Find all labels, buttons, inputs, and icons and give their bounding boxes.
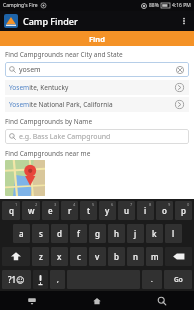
staticText: a [19,228,24,239]
button[interactable]: m [146,247,163,266]
staticText: e.g. Bass Lake Campground [19,132,111,142]
button[interactable]: Go [164,270,192,289]
staticText: Find Campgrounds by Name [5,117,93,126]
staticText: , [57,275,59,284]
button[interactable]: More options [178,11,190,31]
staticText: 4:16 PM [172,2,191,9]
staticText: v [95,251,100,262]
button[interactable]: 2 [22,201,40,220]
button[interactable]: 1 [2,201,20,220]
staticText: 0 [187,202,190,207]
staticText: Yosemite, Kentucky [9,83,69,92]
button[interactable]: Select suggestion [174,82,185,93]
staticText: 4 [73,202,76,207]
staticText: m [151,251,159,262]
button[interactable]: Clear text [174,64,185,75]
button[interactable]: Voice input [33,270,48,289]
button[interactable]: 8 [137,201,154,220]
staticText: 2 [35,202,38,207]
staticText: t [87,205,91,216]
staticText: q [9,205,14,216]
button[interactable]: 7 [118,201,135,220]
button[interactable]: f [70,224,87,243]
button[interactable]: c [70,247,87,266]
staticText: e [48,205,53,216]
staticText: b [114,251,119,262]
button[interactable]: 6 [99,201,116,220]
button[interactable]: 9 [156,201,173,220]
staticText: r [68,205,72,216]
button[interactable]: z [32,247,49,266]
staticText: y [105,205,110,216]
staticText: 7 [130,202,133,207]
button[interactable]: Yosemite, Kentucky [5,80,189,95]
staticText: Camping's Fire [3,2,38,9]
button[interactable]: ?1☺ [2,270,31,289]
button[interactable]: k [146,224,163,243]
staticText: Find Campgrounds near City and State [5,50,123,59]
staticText: 8 [149,202,152,207]
staticText: Camp Finder [23,15,78,27]
button[interactable]: h [108,224,125,243]
staticText: k [152,228,157,239]
button[interactable]: 3 [42,201,59,220]
button[interactable]: 0 [175,201,192,220]
button[interactable]: Hide keyboard [0,291,64,310]
button[interactable]: j [127,224,144,243]
staticText: ?1☺ [8,274,25,285]
staticText: c [77,251,81,262]
staticText: i [144,205,147,216]
staticText: g [95,228,100,239]
staticText: Find Campgrounds near me [5,149,91,158]
staticText: z [39,251,43,262]
button[interactable]: , [50,270,65,289]
button[interactable]: 5 [80,201,97,220]
staticText: j [134,228,137,239]
button[interactable]: . [142,270,162,289]
staticText: 5 [92,202,95,207]
button[interactable]: Yosemite National Park, California [5,97,189,112]
staticText: 3 [54,202,57,207]
button[interactable]: 4 [61,201,78,220]
staticText: l [172,228,175,239]
staticText: . [151,275,153,284]
button[interactable]: Select suggestion [174,99,185,110]
button[interactable]: Find campgrounds near me [5,160,45,196]
staticText: n [133,251,139,262]
button[interactable]: a [13,224,30,243]
button[interactable]: l [165,224,182,243]
staticText: 9 [168,202,171,207]
staticText: 6 [111,202,114,207]
staticText: f [77,228,80,239]
staticText: p [181,205,186,216]
button[interactable]: yosem [5,62,189,77]
staticText: o [162,205,167,216]
staticText: u [124,205,130,216]
staticText: 1 [15,202,18,207]
staticText: x [57,251,62,262]
button[interactable]: App icon [4,14,18,28]
staticText: w [28,205,35,216]
button[interactable]: Home [64,291,129,310]
button[interactable]: e.g. Bass Lake Campground [5,129,189,144]
button[interactable]: Backspace [165,247,192,266]
button[interactable]: Search [129,291,194,310]
staticText: Yosemite National Park, California [9,100,113,109]
button[interactable]: n [127,247,144,266]
staticText: h [114,228,120,239]
button[interactable]: x [51,247,68,266]
button[interactable]: b [108,247,125,266]
staticText: d [57,228,62,239]
button[interactable]: Shift [2,247,30,266]
button[interactable]: s [32,224,49,243]
staticText: yosem [19,65,41,75]
button[interactable]: d [51,224,68,243]
button[interactable]: g [89,224,106,243]
staticText: Find [89,34,105,44]
staticText: s [39,228,43,239]
button[interactable]: Find [0,31,194,46]
staticText: 88% [149,2,159,9]
staticText: Go [174,275,183,284]
button[interactable]: v [89,247,106,266]
